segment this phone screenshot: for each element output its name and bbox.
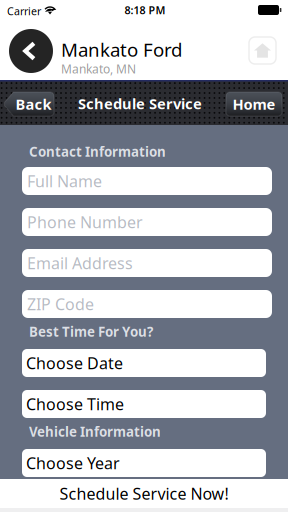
- button[interactable]: Home: [249, 37, 276, 64]
- button[interactable]: ZIP Code: [22, 290, 272, 318]
- staticText: Back: [15, 94, 51, 114]
- staticText: Mankato Ford: [61, 37, 182, 62]
- button[interactable]: Email Address: [22, 249, 272, 277]
- staticText: Vehicle Information: [29, 423, 161, 440]
- staticText: Mankato, MN: [61, 61, 136, 77]
- staticText: Schedule Service Now!: [59, 483, 228, 504]
- staticText: Best Time For You?: [29, 323, 153, 340]
- button[interactable]: Choose Date: [22, 349, 266, 377]
- staticText: Schedule Service: [78, 94, 202, 113]
- staticText: Choose Date: [26, 352, 123, 374]
- staticText: Carrier: [7, 4, 41, 18]
- staticText: Phone Number: [27, 211, 143, 233]
- button[interactable]: Schedule Service Now!: [0, 479, 288, 512]
- staticText: Contact Information: [29, 143, 166, 160]
- button[interactable]: Choose Year: [22, 449, 266, 477]
- button[interactable]: Back: [4, 92, 54, 116]
- staticText: 8:18 PM: [124, 3, 165, 17]
- button[interactable]: Full Name: [22, 167, 272, 195]
- staticText: Choose Year: [26, 452, 120, 474]
- button[interactable]: Home: [226, 92, 282, 116]
- staticText: ZIP Code: [27, 293, 94, 315]
- button[interactable]: Back: [9, 29, 53, 73]
- button[interactable]: Phone Number: [22, 208, 272, 236]
- button[interactable]: Choose Time: [22, 390, 266, 418]
- staticText: Email Address: [27, 252, 133, 274]
- staticText: Full Name: [27, 170, 102, 192]
- staticText: Home: [232, 94, 275, 114]
- staticText: Choose Time: [26, 393, 124, 415]
